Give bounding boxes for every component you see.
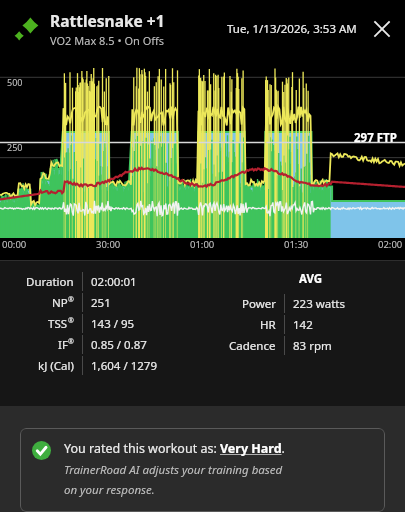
button[interactable]: You rated this workout as: Very Hard. [20,428,385,512]
staticText: You rated this workout as: Very Hard. [64,440,285,457]
staticText: kJ (Cal) [38,358,74,374]
staticText: Rattlesnake +1 [50,10,165,31]
staticText: 01:30 [284,238,309,251]
staticText: 0.85 / 0.87 [91,337,147,353]
staticText: 02:00 [378,238,403,251]
staticText: VO2 Max 8.5 • On Offs [50,33,165,48]
staticText: ® [68,337,74,347]
staticText: ® [68,295,74,305]
staticText: Duration [26,274,74,290]
staticText: 30:00 [96,238,121,251]
staticText: IF [58,337,68,353]
staticText: 251 [91,295,111,311]
staticText: 02:00:01 [91,274,137,290]
staticText: 500 [7,76,23,88]
staticText: Cadence [229,338,276,354]
staticText: Power [242,296,276,312]
staticText: 00:00 [2,238,27,251]
staticText: TrainerRoad AI adjusts your training bas… [64,462,283,478]
staticText: HR [260,317,276,333]
staticText: 223 watts [293,296,346,312]
staticText: on your response. [64,482,155,498]
staticText: 83 rpm [293,338,332,354]
staticText: AVG [299,271,323,287]
staticText: ® [68,316,74,326]
staticText: 297 FTP [354,130,397,146]
staticText: 143 / 95 [91,316,135,332]
staticText: TSS [48,316,68,332]
staticText: Tue, 1/13/2026, 3:53 AM [227,21,357,37]
staticText: 1,604 / 1279 [91,358,157,374]
staticText: NP [52,295,68,311]
staticText: 142 [293,317,313,333]
staticText: 250 [7,141,23,153]
button[interactable]: Close [369,16,395,42]
staticText: 01:00 [190,238,215,251]
